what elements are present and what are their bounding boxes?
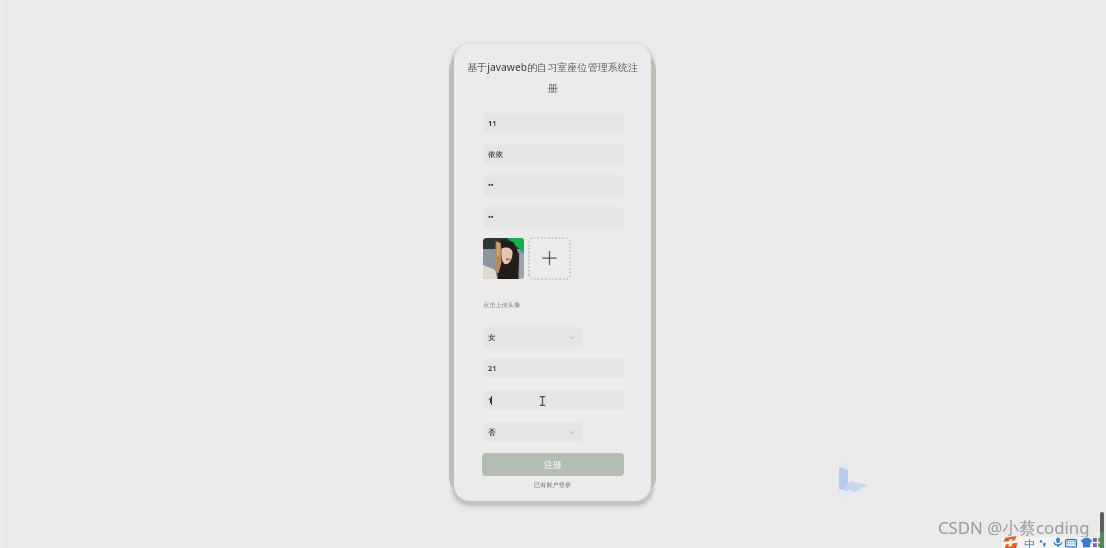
button[interactable]: 21 [484, 358, 624, 378]
button[interactable]: 1 [484, 390, 624, 410]
button[interactable]: •• [484, 175, 624, 195]
staticText: •• [488, 180, 494, 190]
button[interactable]: 注册 [482, 453, 624, 476]
button[interactable]: 女 [484, 327, 582, 347]
staticText: 1 [488, 395, 493, 405]
button[interactable]: 依依 [484, 144, 624, 164]
button[interactable]: 已有账户登录 [534, 481, 572, 489]
staticText: 女 [488, 333, 496, 342]
staticText: 21 [488, 363, 497, 373]
button[interactable]: Current avatar [483, 238, 524, 279]
staticText: •• [488, 212, 494, 222]
staticText: 11 [488, 118, 497, 128]
staticText: CSDN @小蔡coding [938, 516, 1090, 539]
button[interactable]: •• [484, 207, 624, 227]
staticText: 否 [488, 428, 496, 437]
button[interactable]: Upload avatar [529, 238, 570, 279]
staticText: 点击上传头像 [483, 301, 521, 309]
staticText: 基于javaweb的自习室座位管理系统注册 [464, 60, 641, 95]
staticText: 中 [1024, 537, 1035, 548]
staticText: 依依 [488, 150, 503, 159]
button[interactable]: 11 [484, 113, 624, 133]
button[interactable]: 否 [484, 422, 582, 442]
staticText: 注册 [544, 459, 562, 470]
